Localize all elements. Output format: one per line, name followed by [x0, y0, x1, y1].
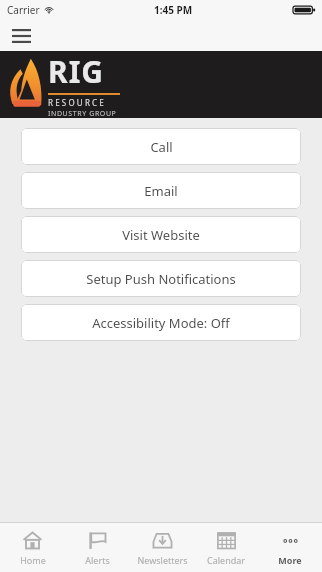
button[interactable]: Setup Push Notifications	[21, 260, 301, 297]
staticText: Home	[20, 554, 46, 566]
staticText: Calendar	[207, 554, 245, 566]
staticText: Setup Push Notifications	[86, 270, 236, 288]
button[interactable]: Home	[0, 523, 65, 572]
button[interactable]: Calendar	[194, 523, 258, 572]
staticText: More	[278, 554, 302, 566]
button[interactable]: Email	[21, 172, 301, 209]
staticText: Visit Website	[122, 226, 200, 244]
staticText: Accessibility Mode: Off	[92, 314, 230, 332]
staticText: Call	[150, 138, 173, 156]
button[interactable]: Menu	[6, 21, 36, 51]
button[interactable]: Accessibility Mode: Off	[21, 304, 301, 341]
button[interactable]: Call	[21, 128, 301, 165]
button[interactable]: More	[258, 523, 322, 572]
staticText: Carrier	[7, 3, 40, 17]
staticText: 1:45 PM	[154, 3, 193, 17]
button[interactable]: Visit Website	[21, 216, 301, 253]
staticText: RIG	[48, 51, 105, 92]
button[interactable]: Alerts	[65, 523, 130, 572]
staticText: Newsletters	[137, 554, 188, 566]
staticText: Alerts	[85, 554, 110, 566]
button[interactable]: Newsletters	[130, 523, 194, 572]
staticText: Email	[144, 182, 178, 200]
staticText: INDUSTRY GROUP	[48, 109, 117, 118]
staticText: RESOURCE	[48, 97, 106, 108]
